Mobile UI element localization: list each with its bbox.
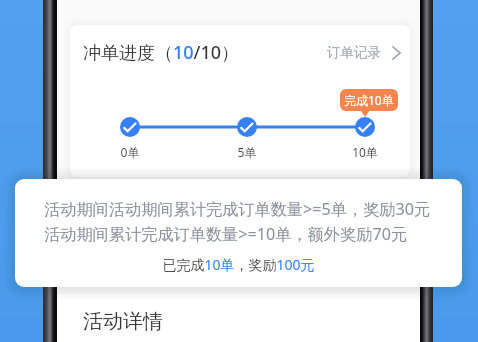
staticText: 已完成10单，奖励100元: [15, 255, 462, 274]
staticText: 完成10单: [344, 92, 394, 108]
button[interactable]: 完成10单: [340, 89, 398, 111]
staticText: 活动详情: [83, 309, 163, 334]
staticText: 0单: [100, 144, 160, 160]
staticText: 活动期间累计完成订单数量>=10单，额外奖励70元: [44, 223, 408, 245]
staticText: 订单记录: [327, 44, 381, 61]
staticText: 10单: [335, 144, 395, 160]
button[interactable]: 活动期间活动期间累计完成订单数量>=5单，奖励30元: [15, 179, 462, 287]
button[interactable]: 订单记录: [327, 40, 401, 65]
staticText: 5单: [217, 144, 277, 160]
staticText: 活动期间活动期间累计完成订单数量>=5单，奖励30元: [44, 198, 431, 220]
staticText: 冲单进度（10/10）: [83, 40, 240, 65]
